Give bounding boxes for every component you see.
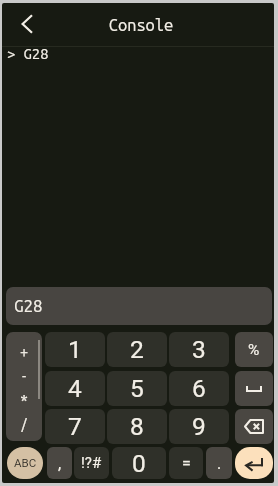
- staticText: +: [20, 343, 29, 359]
- staticText: 6: [192, 374, 206, 403]
- staticText: =: [182, 454, 191, 473]
- staticText: 0: [132, 449, 146, 478]
- button[interactable]: G28: [6, 287, 272, 325]
- button[interactable]: 0: [112, 447, 166, 479]
- button[interactable]: ABC: [7, 447, 43, 479]
- button[interactable]: 6: [169, 371, 229, 406]
- button[interactable]: 8: [107, 409, 167, 444]
- staticText: !?#: [81, 454, 102, 472]
- button[interactable]: 5: [107, 371, 167, 406]
- button[interactable]: 7: [45, 409, 105, 444]
- button[interactable]: /: [6, 411, 42, 435]
- staticText: 9: [192, 412, 206, 441]
- button[interactable]: !?#: [74, 447, 109, 479]
- staticText: ,: [58, 454, 62, 473]
- button[interactable]: Enter: [235, 447, 273, 479]
- button[interactable]: Back: [7, 5, 45, 43]
- button[interactable]: 9: [169, 409, 229, 444]
- button[interactable]: Backspace: [235, 409, 273, 444]
- staticText: G28: [14, 296, 43, 315]
- staticText: 5: [130, 374, 144, 403]
- button[interactable]: 3: [169, 332, 229, 367]
- staticText: 1: [68, 335, 82, 364]
- button[interactable]: *: [6, 387, 42, 411]
- button[interactable]: .: [206, 447, 232, 479]
- button[interactable]: %: [235, 332, 273, 367]
- staticText: *: [20, 391, 29, 407]
- staticText: 7: [68, 412, 82, 441]
- staticText: Console: [2, 16, 278, 34]
- staticText: 8: [130, 412, 144, 441]
- staticText: 2: [130, 335, 144, 364]
- button[interactable]: ,: [47, 447, 72, 479]
- staticText: .: [217, 454, 222, 473]
- button[interactable]: =: [169, 447, 203, 479]
- staticText: 3: [192, 335, 206, 364]
- button[interactable]: -: [6, 363, 42, 387]
- button[interactable]: +: [6, 339, 42, 363]
- staticText: /: [20, 415, 29, 431]
- staticText: %: [248, 341, 260, 359]
- button[interactable]: 2: [107, 332, 167, 367]
- button[interactable]: 4: [45, 371, 105, 406]
- staticText: 4: [68, 374, 82, 403]
- button[interactable]: Space: [235, 371, 273, 406]
- staticText: ABC: [14, 456, 37, 469]
- staticText: -: [20, 367, 29, 383]
- staticText: > G28: [7, 45, 49, 62]
- button[interactable]: 1: [45, 332, 105, 367]
